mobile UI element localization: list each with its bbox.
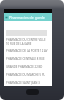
button[interactable]: Pharmacies de garde [4, 13, 52, 21]
staticText: PHARMACIE CENTRALE 8 RUE [6, 57, 45, 61]
staticText: PHARMACIE DU MARCHE 5 PL [6, 73, 46, 77]
staticText: Pharmacies de garde [9, 15, 45, 20]
button[interactable]: GRANDE PHARMACIE 22 BD [4, 65, 52, 73]
button[interactable]: PHARMACIE DU MARCHE 5 PL [4, 73, 52, 81]
button[interactable]: Home [26, 89, 39, 95]
staticText: PHARMACIE SAINT JEAN 3 [6, 81, 40, 85]
staticText: PHARMACIE DE LA POSTE 12 AV [6, 49, 48, 53]
button[interactable]: PHARMACIE CENTRALE 8 RUE [4, 57, 52, 65]
staticText: PHARMACIE DU CENTRE VILLE [6, 38, 46, 42]
button[interactable]: PHARMACIE DE LA POSTE 12 AV [4, 49, 52, 57]
button[interactable]: PHARMACIE SAINT JEAN 3 [4, 81, 52, 86]
button[interactable]: PHARMACIE DU CENTRE VILLE [4, 38, 52, 49]
staticText: 10 RUE DE LA GARE [6, 42, 32, 46]
staticText: GRANDE PHARMACIE 22 BD [6, 65, 43, 69]
